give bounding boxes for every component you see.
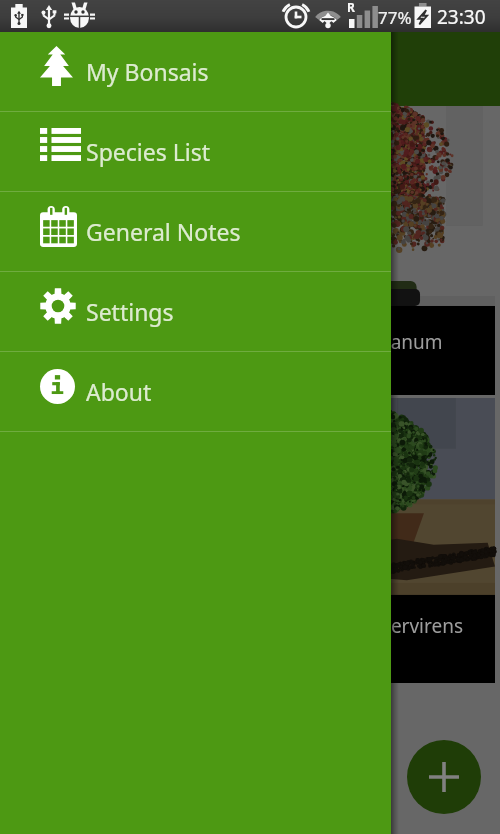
staticText: Juniperus chinensis sempervirens: [164, 613, 464, 639]
staticText: Acer buergerianum: [269, 329, 443, 355]
button[interactable]: Acer buergerianum: [5, 106, 495, 395]
staticText: Species List: [86, 136, 210, 167]
staticText: 23:30: [437, 4, 486, 30]
staticText: General Notes: [86, 216, 241, 247]
button[interactable]: About: [0, 352, 391, 432]
staticText: My Bonsais: [86, 56, 209, 87]
staticText: R: [347, 0, 355, 15]
staticText: 77%: [378, 6, 412, 29]
button[interactable]: Add bonsai: [407, 740, 481, 814]
button[interactable]: Species List: [0, 112, 391, 192]
button[interactable]: Juniperus chinensis sempervirens: [5, 398, 495, 683]
button[interactable]: Settings: [0, 272, 391, 352]
staticText: About: [86, 376, 152, 407]
button[interactable]: [0, 32, 500, 106]
button[interactable]: My Bonsais: [0, 32, 391, 112]
button[interactable]: General Notes: [0, 192, 391, 272]
staticText: Settings: [86, 296, 174, 327]
